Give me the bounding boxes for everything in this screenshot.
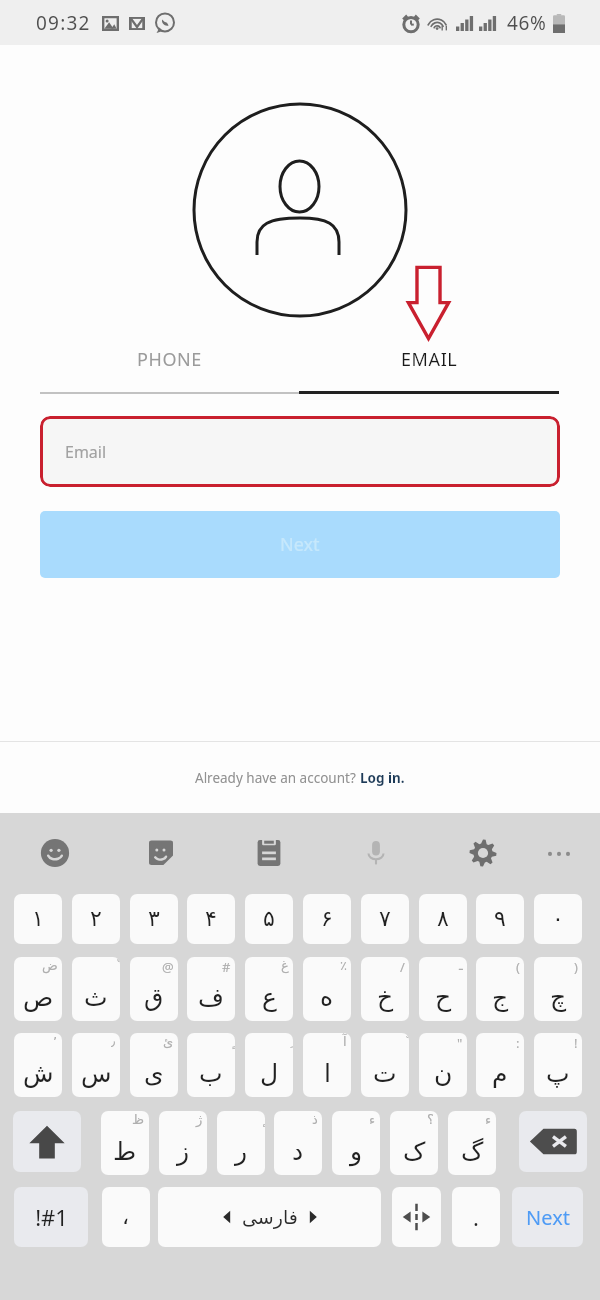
staticText: غ <box>281 958 289 973</box>
button[interactable]: . <box>452 1187 500 1247</box>
staticText: ( <box>516 958 520 976</box>
button[interactable]: ۶ <box>303 894 351 944</box>
staticText: Email <box>65 441 107 463</box>
staticText: فارسی <box>242 1206 298 1228</box>
button[interactable]: / <box>361 957 409 1021</box>
staticText: ! <box>574 1034 578 1052</box>
button[interactable]: # <box>187 957 235 1021</box>
staticText: ۴ <box>205 906 217 932</box>
staticText: ب <box>199 1059 223 1088</box>
button[interactable]: ) <box>534 957 582 1021</box>
button[interactable]: Settings <box>468 838 498 868</box>
button[interactable]: ۳ <box>130 894 178 944</box>
button[interactable]: ٪ <box>303 957 351 1021</box>
staticText: و <box>350 1137 363 1166</box>
staticText: گ <box>461 1137 484 1166</box>
button[interactable]: Stickers <box>146 838 176 868</box>
button[interactable]: ذ <box>274 1111 322 1175</box>
button[interactable]: ٫ <box>72 1033 120 1097</box>
staticText: ٬ <box>53 1034 58 1049</box>
button[interactable]: ( <box>476 957 524 1021</box>
button[interactable]: Emoji <box>40 838 70 868</box>
staticText: ق <box>144 983 164 1012</box>
staticText: ظ <box>132 1112 145 1127</box>
staticText: ن <box>434 1059 453 1088</box>
button[interactable]: Shift <box>13 1111 81 1172</box>
staticText: ز <box>177 1137 190 1166</box>
button[interactable]: ء <box>448 1111 496 1175</box>
button[interactable]: PHONE <box>40 334 299 384</box>
staticText: ا <box>324 1059 331 1088</box>
staticText: س <box>81 1059 112 1088</box>
staticText: ک <box>403 1137 426 1166</box>
staticText: Next <box>526 1204 570 1231</box>
button[interactable]: ئ <box>130 1033 178 1097</box>
staticText: ، <box>122 1204 130 1230</box>
button[interactable]: Clipboard <box>254 838 284 868</box>
staticText: ر <box>235 1137 248 1166</box>
staticText: ش <box>23 1059 54 1088</box>
button[interactable]: ـ <box>419 957 467 1021</box>
staticText: ) <box>574 958 578 976</box>
button[interactable]: ۸ <box>419 894 467 944</box>
button[interactable]: Voice input <box>361 838 391 868</box>
staticText: ۳ <box>148 906 160 932</box>
staticText: ل <box>260 1059 279 1088</box>
button[interactable]: ۵ <box>245 894 293 944</box>
staticText: !#1 <box>35 1202 68 1232</box>
button[interactable]: غ <box>245 957 293 1021</box>
staticText: آ <box>343 1034 347 1049</box>
staticText: ف <box>198 983 224 1012</box>
staticText: پ <box>546 1059 570 1088</box>
staticText: ح <box>435 983 452 1012</box>
staticText: ط <box>113 1137 137 1166</box>
button[interactable]: !#1 <box>14 1187 88 1247</box>
staticText: ء <box>485 1112 492 1127</box>
button[interactable]: ْ <box>72 957 120 1021</box>
button[interactable]: ظ <box>101 1111 149 1175</box>
staticText: ث <box>84 983 108 1012</box>
button[interactable]: Email <box>40 416 560 487</box>
button[interactable]: ٍ <box>187 1033 235 1097</box>
staticText: ۶ <box>321 906 333 932</box>
button[interactable]: ! <box>534 1033 582 1097</box>
staticText: ژ <box>196 1112 203 1127</box>
button[interactable]: ، <box>102 1187 150 1247</box>
button[interactable]: ٬ <box>14 1033 62 1097</box>
staticText: ۸ <box>437 906 449 932</box>
button[interactable]: More options <box>544 838 574 868</box>
button[interactable]: : <box>476 1033 524 1097</box>
button[interactable]: ۲ <box>72 894 120 944</box>
button[interactable]: ٌ <box>361 1033 409 1097</box>
staticText: " <box>457 1034 463 1052</box>
button[interactable]: Next <box>512 1187 583 1247</box>
button[interactable]: ٕ <box>217 1111 265 1175</box>
button[interactable]: Space, Persian <box>158 1187 381 1247</box>
button[interactable]: ض <box>14 957 62 1021</box>
staticText: ذ <box>312 1112 318 1127</box>
button[interactable]: Cursor control <box>392 1187 441 1247</box>
button[interactable]: @ <box>130 957 178 1021</box>
button[interactable]: Backspace <box>519 1111 587 1172</box>
button[interactable]: ۴ <box>187 894 235 944</box>
button[interactable]: ۰ <box>534 894 582 944</box>
button[interactable]: ۱ <box>14 894 62 944</box>
staticText: PHONE <box>137 347 202 372</box>
staticText: / <box>400 958 405 976</box>
staticText: 09:32 <box>36 10 91 36</box>
button[interactable]: ؟ <box>390 1111 438 1175</box>
button[interactable]: ۹ <box>476 894 524 944</box>
staticText: د <box>292 1137 304 1166</box>
button[interactable]: Log in. <box>360 769 405 787</box>
button[interactable]: ء <box>332 1111 380 1175</box>
button[interactable]: ژ <box>159 1111 207 1175</box>
button[interactable]: ِ <box>245 1033 293 1097</box>
button[interactable]: EMAIL <box>299 334 559 384</box>
staticText: ۲ <box>90 906 102 932</box>
button[interactable]: " <box>419 1033 467 1097</box>
staticText: ئ <box>163 1034 174 1049</box>
staticText: ؟ <box>427 1112 434 1127</box>
button[interactable]: آ <box>303 1033 351 1097</box>
button[interactable]: ۷ <box>361 894 409 944</box>
